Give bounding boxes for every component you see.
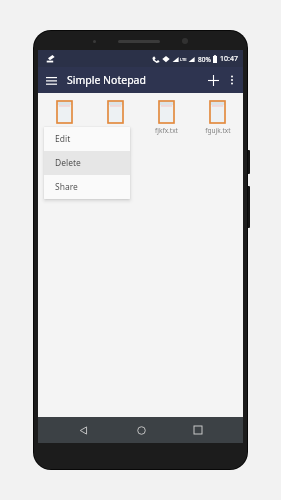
staticText: 10:47 [220, 54, 238, 64]
button[interactable]: Recent apps [186, 418, 210, 442]
button[interactable]: fjkfx.txt [141, 101, 192, 135]
button[interactable]: More options [223, 71, 241, 89]
button[interactable]: Delete [44, 151, 130, 175]
staticText: 80% [198, 55, 211, 64]
button[interactable] [38, 101, 90, 126]
button[interactable]: fgujk.txt [192, 101, 243, 135]
button[interactable]: Back [71, 418, 95, 442]
staticText: fgujk.txt [205, 126, 231, 135]
staticText: Edit [55, 133, 71, 145]
button[interactable] [90, 101, 141, 126]
staticText: LTE [180, 57, 187, 62]
button[interactable]: Edit [44, 127, 130, 151]
staticText: Share [55, 181, 78, 193]
button[interactable]: Open navigation drawer [41, 70, 61, 90]
staticText: Simple Notepad [67, 73, 146, 87]
staticText: Delete [55, 157, 81, 169]
button[interactable]: Home [129, 418, 153, 442]
button[interactable]: Add note [203, 70, 223, 90]
button[interactable]: Share [44, 175, 130, 199]
staticText: fjkfx.txt [155, 126, 178, 135]
